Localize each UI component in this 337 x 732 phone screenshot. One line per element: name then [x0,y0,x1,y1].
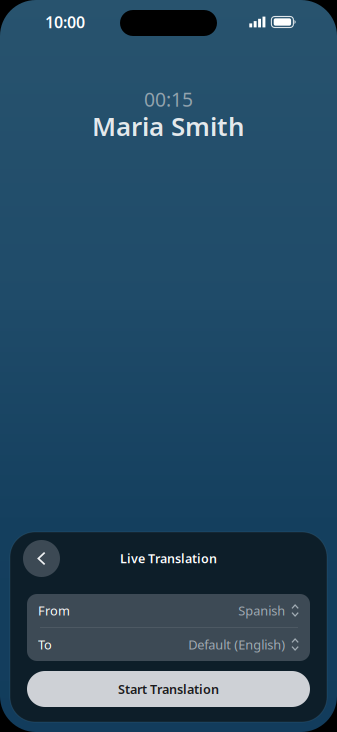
staticText: To [38,636,52,653]
staticText: 10:00 [45,11,85,33]
button[interactable]: To [27,628,310,661]
button[interactable]: Back [23,540,60,577]
staticText: Maria Smith [92,108,245,143]
button[interactable]: From [27,594,310,627]
staticText: Spanish [238,602,285,619]
button[interactable]: Start Translation [27,671,310,707]
staticText: Live Translation [120,550,217,567]
staticText: 00:15 [144,86,193,112]
staticText: Start Translation [118,680,219,698]
staticText: Default (English) [188,636,285,653]
staticText: From [38,602,70,619]
